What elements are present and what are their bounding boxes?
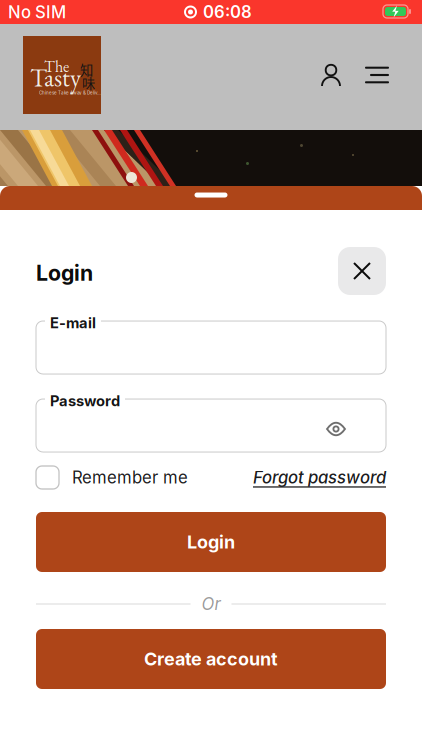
staticText: Chinese Take Away & Delivery: [39, 90, 101, 95]
button[interactable]: Show password: [318, 411, 354, 447]
staticText: Login: [187, 531, 235, 553]
staticText: No SIM: [8, 2, 66, 22]
button[interactable]: Account: [311, 55, 351, 95]
button[interactable]: Forgot password: [216, 466, 386, 489]
staticText: E-mail: [50, 314, 96, 332]
staticText: Create account: [144, 648, 278, 670]
staticText: Tasty: [30, 61, 81, 94]
staticText: 知: [80, 60, 93, 79]
staticText: Forgot password: [253, 467, 386, 488]
button[interactable]: Remember me: [36, 466, 188, 489]
staticText: Or: [201, 594, 220, 614]
staticText: Login: [36, 260, 93, 286]
button[interactable]: Login: [36, 512, 386, 572]
staticText: Password: [50, 392, 120, 410]
button[interactable]: Menu: [357, 55, 397, 95]
staticText: Remember me: [72, 467, 188, 488]
button[interactable]: Close: [338, 247, 386, 295]
button[interactable]: Create account: [36, 629, 386, 689]
staticText: The: [44, 56, 69, 77]
staticText: 味: [82, 73, 95, 92]
staticText: 06:08: [203, 2, 252, 22]
